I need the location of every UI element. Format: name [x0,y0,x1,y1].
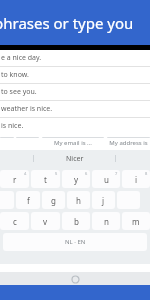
button[interactable]: m [122,212,150,230]
staticText: c [13,216,17,227]
button[interactable]: Home [70,274,80,284]
staticText: phrases or type you [0,13,134,33]
staticText: v [43,216,48,227]
button[interactable]: b [62,212,90,230]
staticText: Nicer [66,154,84,164]
button[interactable]: j [92,191,115,209]
staticText: 6 [85,171,88,176]
staticText: to know. [1,70,29,80]
button[interactable]: i [122,170,150,188]
button[interactable]: c [0,212,29,230]
staticText: 8 [145,171,148,176]
button[interactable]: g [42,191,65,209]
staticText: NL · EN [65,238,86,246]
staticText: 5 [55,171,58,176]
button[interactable]: My address is [107,137,150,149]
button[interactable]: r [0,170,29,188]
staticText: 4 [24,171,27,176]
staticText: b [74,216,79,227]
button[interactable]: e a nice day. [0,50,150,67]
staticText: e a nice day. [1,53,42,63]
button[interactable]: to see you. [0,84,150,101]
button[interactable]: Nicer [34,150,115,167]
button[interactable]: u [92,170,120,188]
staticText: f [27,195,30,206]
staticText: My address is [109,139,148,147]
button[interactable]: is nice. [0,118,150,134]
button[interactable]: My email is ... [42,137,104,149]
staticText: h [76,195,81,206]
button[interactable]: h [67,191,90,209]
button[interactable] [0,137,14,149]
button[interactable]: phrases or type you [0,0,150,45]
button[interactable]: to know. [0,67,150,84]
staticText: to see you. [1,87,37,97]
button[interactable]: v [31,212,60,230]
staticText: i [135,174,138,185]
staticText: n [104,216,109,227]
button[interactable] [16,137,39,149]
staticText: m [132,216,140,227]
button[interactable]: t [31,170,60,188]
button[interactable]: n [92,212,120,230]
staticText: y [74,174,79,185]
staticText: weather is nice. [1,104,53,114]
button[interactable]: NL · EN [3,233,147,251]
staticText: is nice. [1,121,24,131]
staticText: g [51,195,56,206]
button[interactable]: f [16,191,40,209]
staticText: j [102,195,105,206]
staticText: u [104,174,109,185]
button[interactable]: y [62,170,90,188]
button[interactable]: weather is nice. [0,101,150,118]
staticText: 7 [115,171,118,176]
staticText: My email is ... [54,139,92,147]
staticText: t [44,174,47,185]
staticText: r [13,174,17,185]
